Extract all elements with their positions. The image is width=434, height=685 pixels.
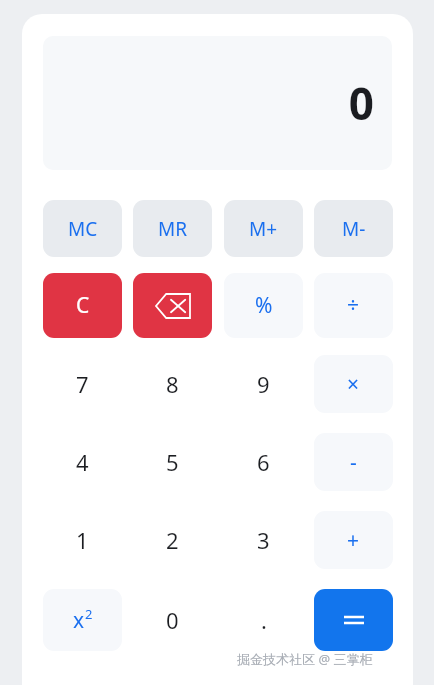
staticText: 2 (166, 525, 179, 555)
staticText: % (255, 291, 273, 320)
staticText: 5 (166, 447, 179, 477)
staticText: 1 (76, 525, 89, 555)
button[interactable]: Backspace (133, 273, 212, 338)
button[interactable]: 6 (224, 433, 303, 491)
button[interactable]: x (43, 589, 122, 651)
button[interactable]: 8 (133, 355, 212, 413)
button[interactable]: 0 (133, 589, 212, 651)
staticText: + (347, 526, 360, 555)
button[interactable]: 1 (43, 511, 122, 569)
staticText: 3 (257, 525, 270, 555)
button[interactable]: 5 (133, 433, 212, 491)
staticText: M+ (249, 216, 278, 242)
staticText: 0 (348, 73, 374, 133)
staticText: 0 (166, 605, 179, 635)
button[interactable]: 7 (43, 355, 122, 413)
staticText: × (347, 370, 360, 399)
button[interactable]: MC (43, 200, 122, 257)
button[interactable]: 2 (133, 511, 212, 569)
button[interactable]: MR (133, 200, 212, 257)
button[interactable]: . (224, 589, 303, 651)
staticText: MC (68, 216, 98, 242)
button[interactable]: C (43, 273, 122, 338)
button[interactable]: 3 (224, 511, 303, 569)
button[interactable]: 4 (43, 433, 122, 491)
button[interactable]: + (314, 511, 393, 569)
staticText: 掘金技术社区 @ 三掌柜 (237, 650, 373, 668)
staticText: M- (342, 216, 366, 242)
staticText: 8 (166, 369, 179, 399)
button[interactable]: M+ (224, 200, 303, 257)
staticText: ÷ (347, 291, 360, 320)
staticText: 9 (257, 369, 270, 399)
button[interactable]: - (314, 433, 393, 491)
button[interactable]: ÷ (314, 273, 393, 338)
button[interactable]: × (314, 355, 393, 413)
staticText: 4 (76, 447, 89, 477)
staticText: 6 (257, 447, 270, 477)
staticText: 7 (76, 369, 89, 399)
staticText: C (76, 291, 90, 320)
staticText: . (261, 605, 267, 635)
staticText: - (350, 448, 357, 477)
staticText: x (73, 606, 85, 635)
staticText: MR (158, 216, 188, 242)
button[interactable]: 9 (224, 355, 303, 413)
button[interactable]: % (224, 273, 303, 338)
staticText: 2 (85, 605, 93, 623)
button[interactable]: Equals (314, 589, 393, 651)
button[interactable]: M- (314, 200, 393, 257)
